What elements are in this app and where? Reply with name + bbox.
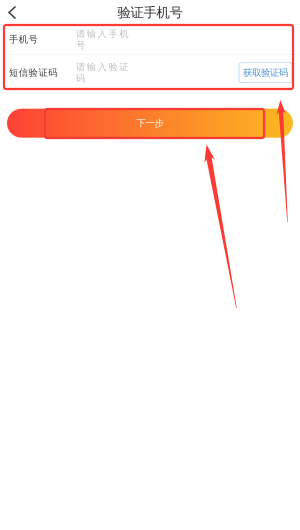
button[interactable]: 下一步 bbox=[0, 109, 300, 138]
button[interactable]: Back bbox=[0, 1, 27, 23]
staticText: 短信验证码 bbox=[9, 67, 57, 78]
staticText: 下一步 bbox=[136, 117, 163, 129]
staticText: 请输入验证码 bbox=[76, 61, 128, 84]
staticText: 请输入手机号 bbox=[76, 28, 128, 51]
staticText: 手机号 bbox=[9, 34, 38, 45]
button[interactable]: 获取验证码 bbox=[239, 63, 292, 83]
staticText: 验证手机号 bbox=[117, 4, 182, 21]
staticText: 获取验证码 bbox=[243, 67, 288, 78]
